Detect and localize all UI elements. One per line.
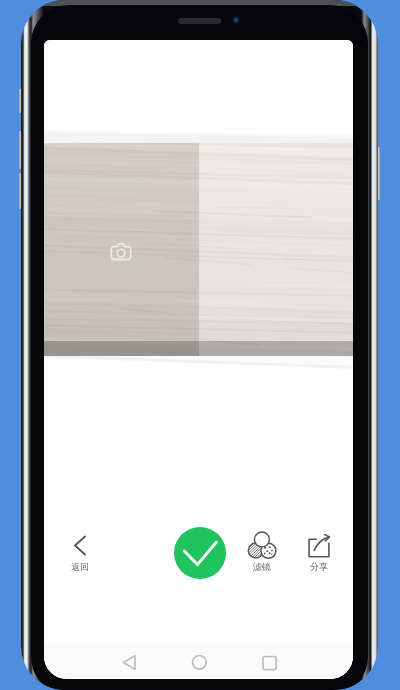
button[interactable]: Home <box>182 645 217 679</box>
button[interactable]: Back <box>112 645 147 679</box>
button[interactable]: 返回 <box>58 530 102 576</box>
button[interactable]: 滤镜 <box>240 530 284 576</box>
button[interactable]: 分享 <box>297 530 341 576</box>
button[interactable]: 确认 <box>174 527 226 579</box>
staticText: 分享 <box>297 561 341 573</box>
staticText: 返回 <box>58 561 102 573</box>
staticText: 滤镜 <box>240 561 284 573</box>
button[interactable]: Recents <box>252 645 287 679</box>
